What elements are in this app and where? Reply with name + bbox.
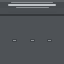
- button[interactable]: [0, 2, 64, 8]
- button[interactable]: More: [47, 39, 52, 42]
- button[interactable]: Select: [30, 39, 35, 42]
- button[interactable]: Back: [12, 39, 17, 42]
